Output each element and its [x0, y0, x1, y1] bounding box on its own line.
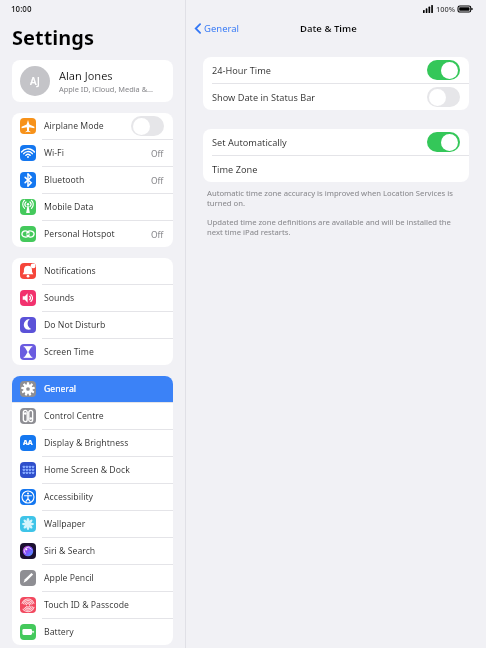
button[interactable]: Airplane Mode [12, 113, 173, 139]
button[interactable]: Apple Pencil [12, 565, 173, 591]
button[interactable]: Screen Time [12, 339, 173, 365]
button[interactable]: 24-Hour Time [427, 60, 460, 80]
staticText: General [204, 22, 240, 35]
staticText: Sounds [44, 292, 75, 304]
button[interactable]: Battery [12, 619, 173, 645]
button[interactable]: Do Not Disturb [12, 312, 173, 338]
staticText: Apple ID, iCloud, Media &... [59, 84, 154, 94]
staticText: AJ [30, 74, 40, 88]
button[interactable]: Airplane Mode [131, 116, 164, 136]
staticText: Personal Hotspot [44, 228, 115, 240]
button[interactable]: Wi-Fi [12, 140, 173, 166]
staticText: Wi-Fi [44, 147, 64, 159]
staticText: Updated time zone definitions are availa… [207, 217, 462, 237]
staticText: Off [151, 148, 164, 159]
button[interactable]: Wallpaper [12, 511, 173, 537]
staticText: Off [151, 229, 164, 240]
button[interactable]: Siri & Search [12, 538, 173, 564]
staticText: Apple Pencil [44, 572, 94, 584]
button[interactable]: Control Centre [12, 403, 173, 429]
staticText: Bluetooth [44, 174, 85, 186]
staticText: Notifications [44, 265, 96, 277]
button[interactable]: Sounds [12, 285, 173, 311]
staticText: Do Not Disturb [44, 319, 106, 331]
staticText: Time Zone [212, 163, 258, 176]
staticText: Settings [12, 24, 94, 51]
staticText: Alan Jones [59, 68, 113, 83]
staticText: Touch ID & Passcode [44, 599, 129, 611]
staticText: 24-Hour Time [212, 64, 271, 77]
staticText: Display & Brightness [44, 437, 129, 449]
staticText: Wallpaper [44, 518, 86, 530]
button[interactable]: Set Automatically [203, 129, 469, 155]
staticText: General [44, 383, 77, 395]
button[interactable]: Show Date in Status Bar [427, 87, 460, 107]
staticText: Screen Time [44, 346, 94, 358]
staticText: Show Date in Status Bar [212, 91, 316, 104]
button[interactable]: Touch ID & Passcode [12, 592, 173, 618]
button[interactable]: Bluetooth [12, 167, 173, 193]
button[interactable]: General [12, 376, 173, 402]
button[interactable]: AJ [12, 60, 173, 102]
button[interactable]: Show Date in Status Bar [203, 84, 469, 110]
button[interactable]: Time Zone [203, 156, 469, 182]
staticText: 10:00 [11, 3, 32, 14]
staticText: Set Automatically [212, 136, 287, 149]
button[interactable]: Set Automatically [427, 132, 460, 152]
button[interactable]: General [186, 20, 246, 37]
staticText: Accessibility [44, 491, 93, 503]
staticText: AA [23, 438, 33, 448]
staticText: Date & Time [300, 22, 357, 35]
button[interactable]: AA [12, 430, 173, 456]
staticText: Battery [44, 626, 74, 638]
button[interactable]: Notifications [12, 258, 173, 284]
staticText: Siri & Search [44, 545, 96, 557]
staticText: Control Centre [44, 410, 104, 422]
button[interactable]: Accessibility [12, 484, 173, 510]
staticText: Mobile Data [44, 201, 94, 213]
staticText: Airplane Mode [44, 120, 104, 132]
button[interactable]: Home Screen & Dock [12, 457, 173, 483]
button[interactable]: Personal Hotspot [12, 221, 173, 247]
staticText: Off [151, 175, 164, 186]
staticText: Automatic time zone accuracy is improved… [207, 188, 462, 208]
staticText: 100% [436, 4, 455, 14]
staticText: Home Screen & Dock [44, 464, 130, 476]
button[interactable]: 24-Hour Time [203, 57, 469, 83]
button[interactable]: Mobile Data [12, 194, 173, 220]
